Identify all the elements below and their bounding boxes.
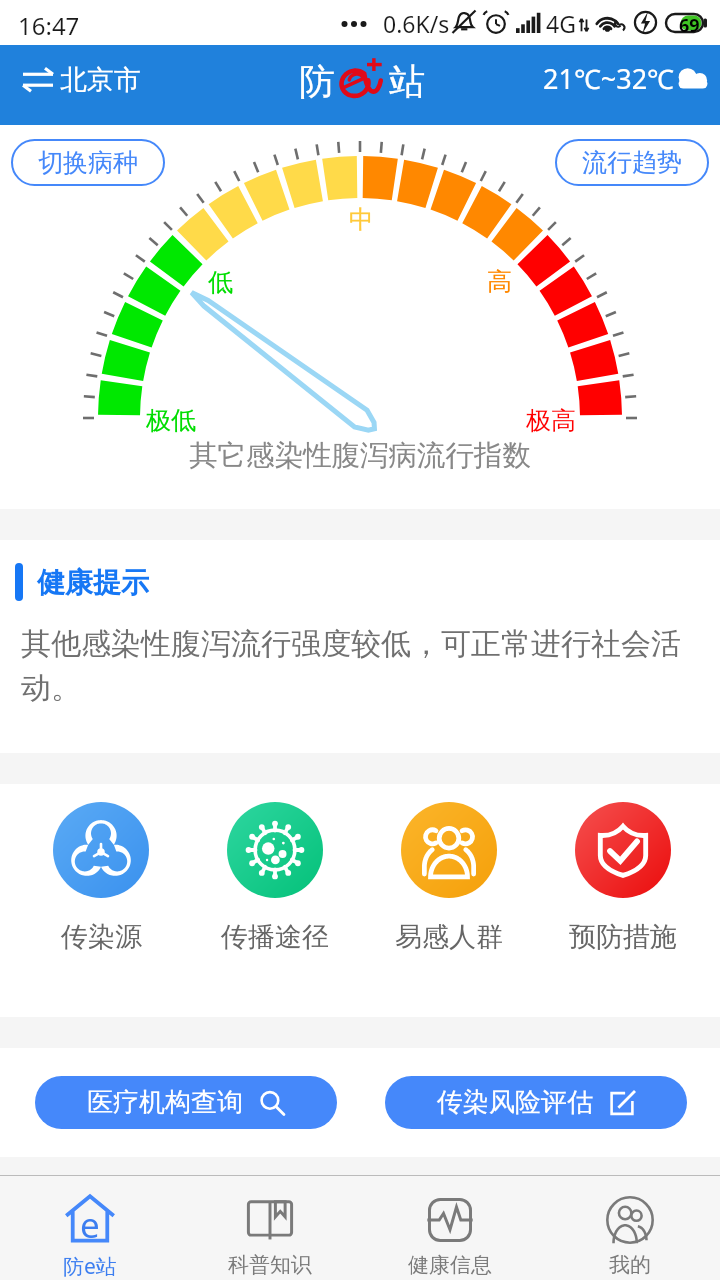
button[interactable]: 北京市 <box>20 63 141 97</box>
staticText: 传染风险评估 <box>437 1086 593 1119</box>
button[interactable]: e <box>0 1176 180 1280</box>
staticText: 预防措施 <box>569 920 677 954</box>
staticText: 16:47 <box>18 9 80 42</box>
staticText: 易感人群 <box>395 920 503 954</box>
button[interactable]: 传播途径 <box>188 802 362 954</box>
staticText: 科普知识 <box>228 1252 312 1278</box>
staticText: 流行趋势 <box>582 147 682 178</box>
staticText: 其它感染性腹泻病流行指数 <box>189 438 531 474</box>
button[interactable]: 21℃~32℃ <box>543 60 712 97</box>
button[interactable]: 传染源 <box>14 802 188 954</box>
staticText: 切换病种 <box>38 147 138 178</box>
button[interactable]: 切换病种 <box>11 139 165 186</box>
button[interactable]: 科普知识 <box>180 1176 360 1280</box>
staticText: 极低 <box>146 405 196 436</box>
button[interactable]: 医疗机构查询 <box>35 1076 337 1129</box>
staticText: 站 <box>389 59 425 104</box>
button[interactable]: 易感人群 <box>362 802 536 954</box>
staticText: 防 <box>299 59 335 104</box>
staticText: 低 <box>208 267 233 298</box>
button[interactable]: 传染风险评估 <box>385 1076 687 1129</box>
staticText: 极高 <box>526 405 576 436</box>
staticText: 医疗机构查询 <box>87 1086 243 1119</box>
button[interactable]: 我的 <box>540 1176 720 1280</box>
button[interactable]: 预防措施 <box>536 802 710 954</box>
staticText: 21℃~32℃ <box>543 60 674 97</box>
staticText: 防e站 <box>63 1252 117 1280</box>
staticText: 传染源 <box>61 920 142 954</box>
staticText: 69 <box>679 13 700 33</box>
button[interactable]: 流行趋势 <box>555 139 709 186</box>
staticText: 其他感染性腹泻流行强度较低，可正常进行社会活动。 <box>21 625 720 707</box>
staticText: 4G <box>546 8 576 39</box>
staticText: 健康提示 <box>37 565 149 600</box>
button[interactable]: 健康信息 <box>360 1176 540 1280</box>
staticText: 0.6K/s <box>383 8 450 39</box>
staticText: e <box>80 1201 100 1249</box>
staticText: 健康信息 <box>408 1252 492 1278</box>
staticText: 传播途径 <box>221 920 329 954</box>
staticText: 我的 <box>609 1252 651 1278</box>
staticText: 北京市 <box>60 63 141 97</box>
staticText: 中 <box>349 204 374 235</box>
staticText: 高 <box>487 266 512 297</box>
